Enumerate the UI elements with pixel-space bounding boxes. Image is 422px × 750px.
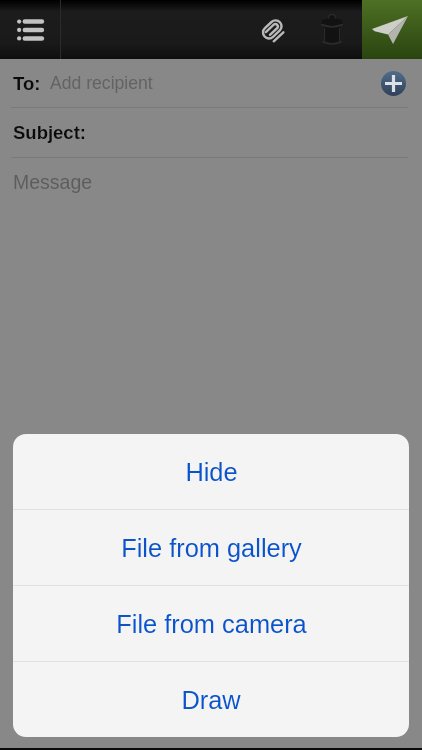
button[interactable]: Draw: [13, 662, 409, 737]
button[interactable]: Attach: [248, 0, 296, 59]
button[interactable]: Send: [362, 0, 422, 59]
button[interactable]: File from camera: [13, 586, 409, 661]
staticText: To:: [13, 73, 41, 94]
button[interactable]: Add recipient: [381, 71, 406, 96]
staticText: Hide: [185, 458, 238, 486]
staticText: File from camera: [116, 610, 307, 638]
staticText: Message: [13, 171, 93, 193]
button[interactable]: Hide: [13, 434, 409, 509]
button[interactable]: Subject:: [0, 108, 422, 157]
button[interactable]: Message: [0, 158, 422, 750]
staticText: Subject:: [13, 122, 86, 143]
staticText: Draw: [181, 686, 241, 714]
button[interactable]: File from gallery: [13, 510, 409, 585]
button[interactable]: Delete: [308, 0, 356, 59]
button[interactable]: Menu: [0, 0, 60, 59]
staticText: File from gallery: [121, 534, 302, 562]
staticText: Add recipient: [50, 73, 153, 93]
